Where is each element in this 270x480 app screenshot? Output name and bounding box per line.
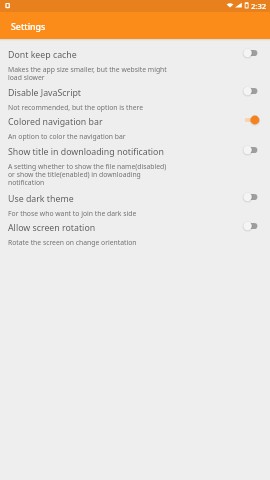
- staticText: Colored navigation bar: [8, 116, 103, 128]
- button[interactable]: Use dark theme: [0, 193, 270, 222]
- button[interactable]: Off: [244, 220, 262, 232]
- button[interactable]: Off: [244, 47, 262, 59]
- button[interactable]: On: [244, 114, 262, 126]
- staticText: An option to color the navigation bar: [8, 132, 126, 140]
- button[interactable]: Off: [244, 191, 262, 203]
- staticText: 2:32: [251, 1, 267, 11]
- staticText: Show title in downloading notification: [8, 146, 164, 158]
- button[interactable]: Allow screen rotation: [0, 222, 270, 251]
- staticText: Rotate the screen on change orientation: [8, 238, 137, 246]
- button[interactable]: Colored navigation bar: [0, 116, 270, 146]
- button[interactable]: Off: [244, 85, 262, 97]
- button[interactable]: Off: [244, 144, 262, 156]
- staticText: Allow screen rotation: [8, 222, 96, 234]
- staticText: Use dark theme: [8, 193, 74, 205]
- staticText: Settings: [11, 21, 46, 33]
- staticText: Dont keep cache: [8, 49, 77, 61]
- staticText: Disable JavaScript: [8, 87, 82, 99]
- staticText: A setting whether to show the file name(…: [8, 162, 170, 186]
- button[interactable]: Disable JavaScript: [0, 87, 270, 116]
- staticText: Not recommended, but the option is there: [8, 103, 144, 111]
- staticText: For those who want to join the dark side: [8, 209, 137, 217]
- button[interactable]: Show title in downloading notification: [0, 146, 270, 193]
- button[interactable]: Dont keep cache: [0, 49, 270, 87]
- staticText: Makes the app size smaller, but the webs…: [8, 65, 170, 81]
